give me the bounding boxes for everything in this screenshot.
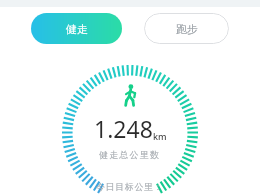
staticText: 健走 bbox=[66, 22, 88, 36]
staticText: 跑步 bbox=[176, 22, 198, 36]
staticText: 1.248 bbox=[94, 113, 153, 144]
button[interactable]: 健走 bbox=[31, 13, 122, 44]
staticText: 健走总公里数 bbox=[99, 149, 161, 160]
staticText: km bbox=[153, 130, 167, 142]
other: Walking bbox=[121, 84, 139, 106]
button[interactable]: 跑步 bbox=[144, 13, 229, 44]
staticText: 今日目标公里： bbox=[96, 181, 164, 192]
